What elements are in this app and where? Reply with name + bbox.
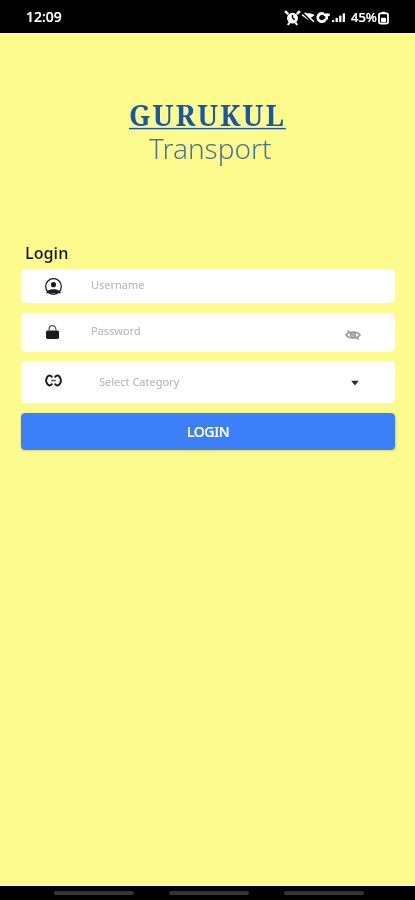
staticText: LOGIN: [187, 422, 230, 441]
button[interactable]: Navigation: [169, 891, 249, 895]
button[interactable]: Select Category: [21, 361, 395, 403]
staticText: Select Category: [99, 374, 180, 389]
button[interactable]: Username: [21, 269, 395, 303]
staticText: Transport: [149, 129, 272, 167]
staticText: 45%: [351, 8, 377, 26]
button[interactable]: LOGIN: [21, 413, 395, 450]
button[interactable]: Show password: [345, 327, 361, 343]
button[interactable]: Navigation: [54, 891, 134, 895]
staticText: Login: [25, 242, 69, 264]
staticText: Username: [91, 277, 145, 292]
button[interactable]: Select category: [350, 378, 360, 388]
button[interactable]: Navigation: [284, 891, 364, 895]
staticText: 12:09: [26, 7, 62, 26]
staticText: Password: [91, 323, 141, 338]
button[interactable]: Password: [21, 313, 395, 352]
staticText: GURUKUL: [129, 96, 286, 134]
